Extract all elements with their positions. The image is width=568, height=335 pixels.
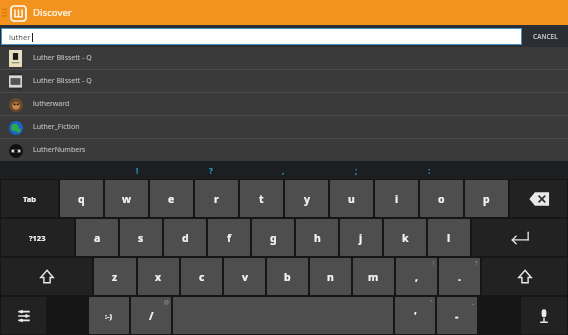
button[interactable]: ;	[320, 161, 393, 179]
button[interactable]: :	[393, 161, 466, 179]
button[interactable]: g	[252, 219, 294, 256]
staticText: f	[227, 231, 232, 245]
staticText: ?	[475, 259, 478, 266]
button[interactable]: q	[60, 180, 103, 217]
button[interactable]: ?	[174, 161, 247, 179]
button[interactable]: Backspace	[510, 180, 567, 217]
staticText: "	[430, 298, 433, 305]
staticText: Luther_Fiction	[33, 122, 80, 132]
staticText: LutherNumbers	[33, 145, 86, 155]
button[interactable]: h	[296, 219, 338, 256]
staticText: t	[259, 192, 264, 206]
staticText: :-)	[105, 311, 113, 321]
button[interactable]: lutherward	[0, 93, 568, 115]
staticText: k	[402, 231, 409, 245]
button[interactable]: :-)	[89, 297, 129, 334]
button[interactable]: x	[138, 258, 179, 295]
staticText: luther	[9, 32, 31, 42]
button[interactable]: k	[384, 219, 426, 256]
staticText: u	[348, 192, 355, 206]
button[interactable]: a	[76, 219, 118, 256]
staticText: s	[138, 231, 144, 245]
staticText: i	[395, 192, 399, 206]
staticText: lutherward	[33, 99, 70, 109]
staticText: b	[284, 270, 291, 284]
staticText: r	[214, 192, 219, 206]
button[interactable]: z	[94, 258, 136, 295]
staticText: CANCEL	[533, 32, 558, 41]
staticText: -	[455, 309, 459, 323]
staticText: l	[447, 231, 451, 245]
staticText: !	[433, 259, 435, 266]
button[interactable]: '	[395, 297, 435, 334]
staticText: x	[155, 270, 162, 284]
staticText: p	[483, 192, 490, 206]
staticText: ,	[415, 270, 418, 284]
staticText: ?	[209, 165, 213, 176]
button[interactable]: m	[353, 258, 394, 295]
staticText: /	[149, 308, 154, 323]
button[interactable]: /	[131, 297, 171, 334]
button[interactable]: b	[267, 258, 308, 295]
button[interactable]: i	[375, 180, 418, 217]
staticText: !	[136, 165, 139, 176]
staticText: q	[78, 192, 85, 206]
button[interactable]: LutherNumbers	[0, 139, 568, 161]
button[interactable]: Shift	[1, 258, 92, 295]
button[interactable]: Luther Blissett - Q	[0, 47, 568, 69]
button[interactable]: l	[428, 219, 470, 256]
staticText: Luther Blissett - Q	[33, 76, 92, 86]
staticText: .	[458, 270, 461, 284]
button[interactable]: Luther_Fiction	[0, 116, 568, 138]
staticText: @	[164, 298, 169, 305]
staticText: o	[438, 192, 445, 206]
staticText: Discover	[33, 6, 72, 19]
staticText: a	[94, 231, 101, 245]
button[interactable]: w	[105, 180, 148, 217]
button[interactable]: CANCEL	[522, 25, 568, 47]
button[interactable]: -	[437, 297, 477, 334]
button[interactable]: j	[340, 219, 382, 256]
button[interactable]: luther	[1, 28, 522, 45]
staticText: y	[304, 192, 310, 206]
staticText: v	[242, 270, 248, 284]
staticText: _	[472, 298, 475, 305]
staticText: ,	[282, 165, 285, 176]
staticText: Luther Blissett - Q	[33, 53, 92, 63]
staticText: '	[414, 309, 417, 323]
button[interactable]: ,	[247, 161, 320, 179]
button[interactable]: Luther Blissett - Q	[0, 70, 568, 92]
button[interactable]: c	[181, 258, 222, 295]
button[interactable]: !	[101, 161, 174, 179]
button[interactable]: .	[439, 258, 480, 295]
button[interactable]: Shift	[482, 258, 567, 295]
button[interactable]: y	[285, 180, 328, 217]
button[interactable]: Input settings	[1, 297, 46, 334]
staticText: ?123	[29, 233, 46, 243]
button[interactable]: Tab	[1, 180, 58, 217]
button[interactable]: s	[120, 219, 162, 256]
button[interactable]: ,	[396, 258, 437, 295]
button[interactable]: r	[195, 180, 238, 217]
staticText: :	[428, 165, 431, 176]
button[interactable]: p	[465, 180, 508, 217]
button[interactable]: u	[330, 180, 373, 217]
button[interactable]: Wattpad home	[7, 2, 29, 24]
button[interactable]: n	[310, 258, 351, 295]
button[interactable]: v	[224, 258, 265, 295]
button[interactable]: t	[240, 180, 283, 217]
button[interactable]: Enter	[472, 219, 567, 256]
button[interactable]: ?123	[1, 219, 74, 256]
staticText: h	[314, 231, 321, 245]
button[interactable]: o	[420, 180, 463, 217]
staticText: m	[368, 270, 379, 284]
button[interactable]: Open navigation drawer	[1, 6, 7, 20]
staticText: e	[168, 192, 175, 206]
button[interactable]: f	[208, 219, 250, 256]
button[interactable]: d	[164, 219, 206, 256]
button[interactable]: Voice input	[521, 297, 567, 334]
staticText: c	[199, 270, 205, 284]
staticText: j	[359, 231, 363, 245]
button[interactable]: e	[150, 180, 193, 217]
